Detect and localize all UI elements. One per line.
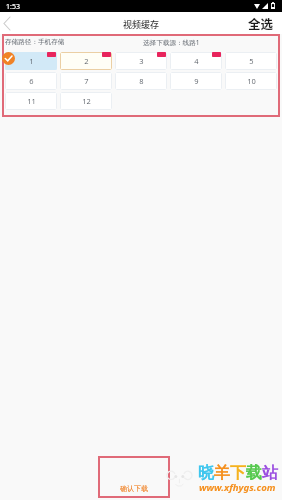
staticText: 下 <box>230 463 246 483</box>
button[interactable]: 1 <box>5 52 57 70</box>
staticText: 晓 <box>198 463 214 483</box>
staticText: 9 <box>194 76 199 86</box>
button[interactable]: 12 <box>60 92 112 110</box>
button[interactable]: 5 <box>225 52 277 70</box>
staticText: 确认下载 <box>120 484 148 493</box>
staticText: 4 <box>194 56 199 66</box>
button[interactable]: 6 <box>5 72 57 90</box>
staticText: 羊 <box>214 463 230 483</box>
staticText: 站 <box>262 463 278 483</box>
staticText: 选择下载源：线路1 <box>143 38 200 47</box>
staticText: 2 <box>84 56 89 66</box>
button[interactable]: 7 <box>60 72 112 90</box>
staticText: 12 <box>82 96 91 106</box>
button[interactable]: 确认下载 <box>98 481 170 496</box>
button[interactable]: Back <box>0 12 18 34</box>
staticText: 7 <box>84 76 89 86</box>
staticText: 10 <box>247 76 256 86</box>
staticText: www.xfhygs.com <box>199 481 276 494</box>
button[interactable]: 4 <box>170 52 222 70</box>
button[interactable]: 9 <box>170 72 222 90</box>
button[interactable]: 10 <box>225 72 277 90</box>
button[interactable]: 全选 <box>248 14 274 32</box>
staticText: 3 <box>139 56 144 66</box>
staticText: 11 <box>27 96 36 106</box>
button[interactable]: 2 <box>60 52 112 70</box>
staticText: 载 <box>246 463 262 483</box>
staticText: 视频缓存 <box>123 18 160 31</box>
button[interactable]: 8 <box>115 72 167 90</box>
staticText: 1 <box>29 56 34 66</box>
staticText: 8 <box>139 76 144 86</box>
button[interactable]: 11 <box>5 92 57 110</box>
staticText: 5 <box>249 56 254 66</box>
staticText: 6 <box>29 76 34 86</box>
button[interactable]: 3 <box>115 52 167 70</box>
staticText: 全选 <box>248 14 274 32</box>
staticText: 存储路径：手机存储 <box>5 38 65 46</box>
staticText: 1:53 <box>6 2 20 12</box>
